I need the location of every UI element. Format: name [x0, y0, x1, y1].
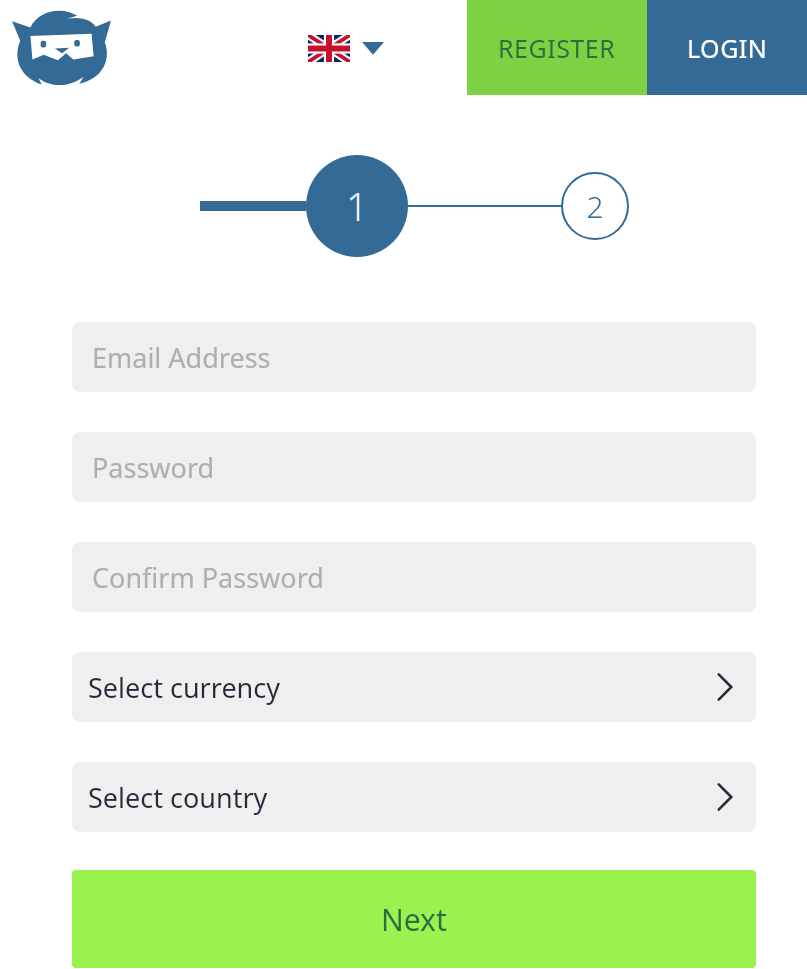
- staticText: Confirm Password: [92, 559, 324, 596]
- button[interactable]: REGISTER: [467, 0, 647, 95]
- button[interactable]: 1: [306, 155, 408, 257]
- button[interactable]: Confirm Password: [72, 542, 756, 612]
- staticText: Email Address: [92, 339, 271, 376]
- button[interactable]: Select language: [308, 26, 384, 70]
- button[interactable]: 2: [562, 173, 628, 239]
- button[interactable]: Password: [72, 432, 756, 502]
- staticText: LOGIN: [687, 31, 768, 65]
- button[interactable]: Email Address: [72, 322, 756, 392]
- staticText: 2: [586, 186, 604, 227]
- staticText: Password: [92, 449, 215, 486]
- button[interactable]: Home logo: [10, 8, 112, 86]
- staticText: Select country: [88, 779, 716, 816]
- staticText: REGISTER: [498, 31, 616, 65]
- staticText: 1: [346, 180, 368, 232]
- staticText: Select currency: [88, 669, 716, 706]
- staticText: Next: [381, 899, 447, 940]
- button[interactable]: Next: [72, 870, 756, 968]
- button[interactable]: Select currency: [72, 652, 756, 722]
- button[interactable]: LOGIN: [647, 0, 807, 95]
- button[interactable]: Select country: [72, 762, 756, 832]
